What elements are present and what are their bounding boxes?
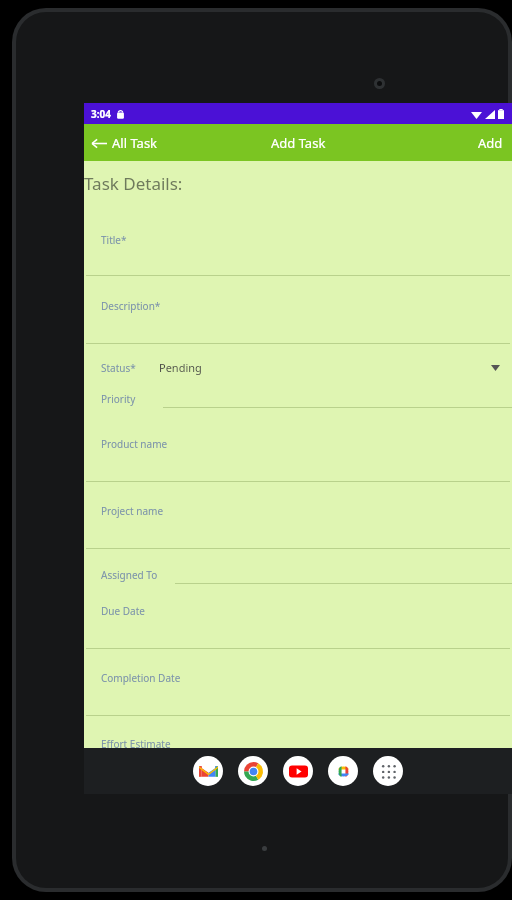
staticText: Pending bbox=[159, 360, 202, 375]
button[interactable]: Google Photos bbox=[328, 756, 358, 786]
staticText: Add Task bbox=[271, 134, 326, 152]
staticText: Status* bbox=[101, 361, 136, 375]
button[interactable]: Priority bbox=[84, 384, 512, 414]
button[interactable]: Effort Estimate bbox=[84, 727, 512, 761]
button[interactable]: Completion Date bbox=[84, 661, 512, 695]
button[interactable]: Due Date bbox=[84, 594, 512, 628]
button[interactable]: Assigned To bbox=[84, 560, 512, 590]
button[interactable]: Title* bbox=[84, 223, 512, 257]
staticText: Effort Estimate bbox=[101, 737, 171, 751]
staticText: All Task bbox=[112, 134, 158, 152]
staticText: Assigned To bbox=[101, 568, 158, 582]
staticText: Description* bbox=[101, 299, 161, 313]
button[interactable]: Chrome bbox=[238, 756, 268, 786]
button[interactable]: Add bbox=[469, 127, 512, 159]
button[interactable]: YouTube bbox=[283, 756, 313, 786]
staticText: Project name bbox=[101, 504, 164, 518]
button[interactable]: Project name bbox=[84, 494, 512, 528]
button[interactable]: Status* bbox=[84, 360, 512, 375]
staticText: Due Date bbox=[101, 604, 145, 618]
staticText: Task Details: bbox=[84, 172, 183, 195]
button[interactable]: Description* bbox=[84, 289, 512, 323]
staticText: 3:04 bbox=[91, 107, 111, 121]
button[interactable]: Product name bbox=[84, 427, 512, 461]
button[interactable]: Gmail bbox=[193, 756, 223, 786]
staticText: Priority bbox=[101, 392, 136, 406]
staticText: Product name bbox=[101, 437, 168, 451]
staticText: Completion Date bbox=[101, 671, 181, 685]
staticText: Title* bbox=[101, 233, 127, 247]
button[interactable]: All Task bbox=[84, 128, 166, 158]
button[interactable]: All apps bbox=[373, 756, 403, 786]
staticText: Add bbox=[478, 134, 503, 152]
